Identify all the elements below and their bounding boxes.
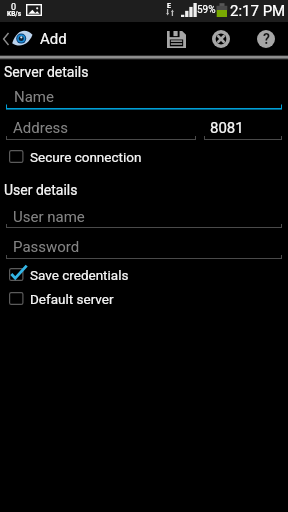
button[interactable]: Navigate up <box>0 22 75 56</box>
button[interactable]: Save <box>154 22 199 56</box>
staticText: 8081 <box>210 119 244 137</box>
staticText: KB/s <box>7 10 22 18</box>
staticText: 2:17 PM <box>230 2 286 20</box>
staticText: ? <box>263 31 270 47</box>
staticText: Server details <box>4 64 89 80</box>
staticText: 59% <box>197 4 216 16</box>
button[interactable]: Secure connection <box>0 142 288 167</box>
staticText: Add <box>40 30 67 48</box>
staticText: Name <box>14 88 54 106</box>
staticText: Address <box>13 119 69 137</box>
staticText: Save credentials <box>30 267 129 283</box>
staticText: Secure connection <box>30 149 142 165</box>
staticText: Default server <box>30 291 114 307</box>
button[interactable]: Help <box>243 22 288 56</box>
staticText: E <box>167 2 171 10</box>
button[interactable]: Cancel <box>199 22 243 56</box>
button[interactable]: Save credentials <box>0 260 288 285</box>
staticText: User name <box>13 208 85 226</box>
staticText: Password <box>13 238 80 256</box>
staticText: User details <box>4 182 78 198</box>
staticText: 0 <box>11 2 17 13</box>
button[interactable]: Default server <box>0 284 288 309</box>
